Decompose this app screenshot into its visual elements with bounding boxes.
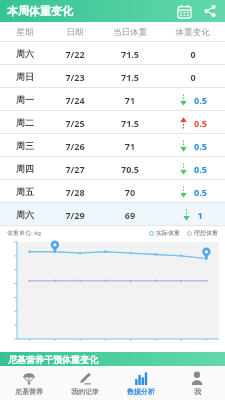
staticText: 70 [100, 186, 160, 198]
staticText: 7/24 [50, 94, 100, 106]
staticText: 71.5 [100, 71, 160, 83]
button[interactable]: 我的记录 [57, 366, 113, 400]
staticText: 周日 [0, 71, 50, 82]
staticText: 数据分析 [127, 387, 155, 396]
staticText: 7/22 [50, 48, 100, 60]
staticText: 本周体重变化 [7, 4, 73, 18]
staticText: 7/28 [50, 186, 100, 198]
button[interactable]: 周三 [0, 134, 225, 157]
button[interactable]: 我 [169, 366, 225, 400]
staticText: 体重单位: kg [7, 229, 42, 237]
staticText: 周一 [0, 94, 50, 105]
button[interactable]: Share [199, 0, 221, 22]
staticText: 日期 [50, 27, 100, 38]
staticText: 0.5 [194, 186, 207, 198]
staticText: 0.5 [194, 140, 207, 152]
staticText: 周四 [0, 163, 50, 174]
button[interactable]: 周二 [0, 111, 225, 134]
staticText: 7/27 [50, 163, 100, 175]
button[interactable]: 周一 [0, 88, 225, 111]
staticText: 71.5 [100, 48, 160, 60]
staticText: 7/23 [50, 71, 100, 83]
staticText: 当日体重 [100, 27, 160, 38]
staticText: 71 [100, 94, 160, 106]
button[interactable]: 周六 [0, 42, 225, 65]
staticText: 0.5 [194, 117, 207, 129]
staticText: 7/25 [50, 117, 100, 129]
staticText: 70.5 [100, 163, 160, 175]
staticText: 0 [190, 48, 196, 60]
staticText: 69 [100, 209, 160, 221]
staticText: 71 [100, 140, 160, 152]
button[interactable]: 周四 [0, 157, 225, 180]
staticText: 71.5 [100, 117, 160, 129]
staticText: 星期 [0, 27, 50, 38]
staticText: 我的记录 [71, 387, 99, 396]
staticText: 1 [197, 209, 203, 221]
staticText: 理想体重 [194, 229, 218, 237]
staticText: 7/26 [50, 140, 100, 152]
staticText: 实际体重 [156, 229, 180, 237]
staticText: 我 [194, 387, 201, 396]
staticText: 体重变化 [160, 27, 225, 38]
button[interactable]: Calendar [173, 0, 195, 22]
staticText: 周五 [0, 186, 50, 197]
button[interactable]: 尼基营养 [0, 366, 57, 400]
staticText: 7/29 [50, 209, 100, 221]
staticText: 0 [190, 71, 196, 83]
button[interactable]: 周五 [0, 180, 225, 203]
staticText: 尼基营养 [15, 387, 43, 396]
staticText: 0.5 [194, 163, 207, 175]
button[interactable]: 周日 [0, 65, 225, 88]
staticText: 周六 [0, 48, 50, 59]
button[interactable]: 周六 [0, 203, 225, 226]
staticText: 尼基营养干预体重变化 [8, 354, 98, 365]
staticText: 0.5 [194, 94, 207, 106]
staticText: 周二 [0, 117, 50, 128]
button[interactable]: 数据分析 [113, 366, 169, 400]
staticText: 周六 [0, 209, 50, 220]
staticText: 周三 [0, 140, 50, 151]
